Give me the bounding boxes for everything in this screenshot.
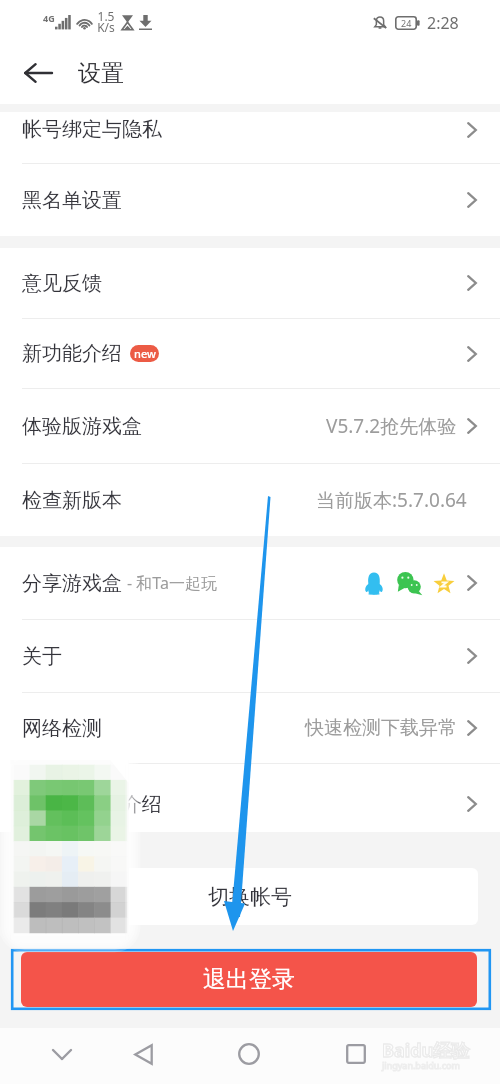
staticText: 分享游戏盒: [22, 571, 122, 596]
button[interactable]: Back: [16, 51, 60, 95]
button[interactable]: 意见反馈: [0, 248, 500, 318]
staticText: 体验版游戏盒: [22, 414, 142, 439]
button[interactable]: 关于: [0, 620, 500, 692]
button[interactable]: Hide keyboard: [42, 1034, 82, 1074]
staticText: - 和Ta一起玩: [127, 572, 217, 594]
button[interactable]: 黑名单设置: [0, 164, 500, 236]
staticText: 黑名单设置: [22, 188, 122, 213]
staticText: 24: [401, 17, 412, 29]
staticText: 快速检测下载异常: [305, 716, 457, 740]
staticText: 网络检测: [22, 716, 102, 741]
staticText: 新用户使用介绍: [22, 792, 162, 817]
button[interactable]: 退出登录: [21, 952, 477, 1007]
staticText: 4G: [43, 12, 55, 24]
staticText: V5.7.2抢先体验: [326, 413, 457, 439]
staticText: 退出登录: [203, 965, 295, 994]
button[interactable]: 切换帐号: [22, 868, 478, 925]
staticText: 当前版本:5.7.0.64: [316, 487, 467, 513]
staticText: 1.5 K/s: [97, 8, 115, 35]
staticText: new: [134, 346, 156, 361]
staticText: 帐号绑定与隐私: [22, 117, 162, 142]
staticText: 意见反馈: [22, 271, 102, 296]
button[interactable]: 分享游戏盒: [0, 547, 500, 619]
staticText: 设置: [78, 59, 124, 88]
button[interactable]: Recents: [336, 1034, 376, 1074]
staticText: 关于: [22, 644, 62, 669]
staticText: 切换帐号: [208, 884, 292, 910]
button[interactable]: 帐号绑定与隐私: [0, 112, 500, 163]
button[interactable]: Back: [123, 1034, 163, 1074]
staticText: 新功能介绍: [22, 341, 122, 366]
button[interactable]: 新功能介绍: [0, 319, 500, 388]
button[interactable]: 新用户使用介绍: [0, 764, 500, 832]
button[interactable]: Home: [229, 1034, 269, 1074]
staticText: jingyan.baidu.com: [382, 1059, 460, 1071]
staticText: Baidu经验: [382, 1038, 470, 1063]
staticText: 2:28: [427, 12, 459, 34]
button[interactable]: 体验版游戏盒: [0, 389, 500, 463]
staticText: 检查新版本: [22, 488, 122, 513]
button[interactable]: 检查新版本: [0, 464, 500, 536]
button[interactable]: 网络检测: [0, 693, 500, 763]
